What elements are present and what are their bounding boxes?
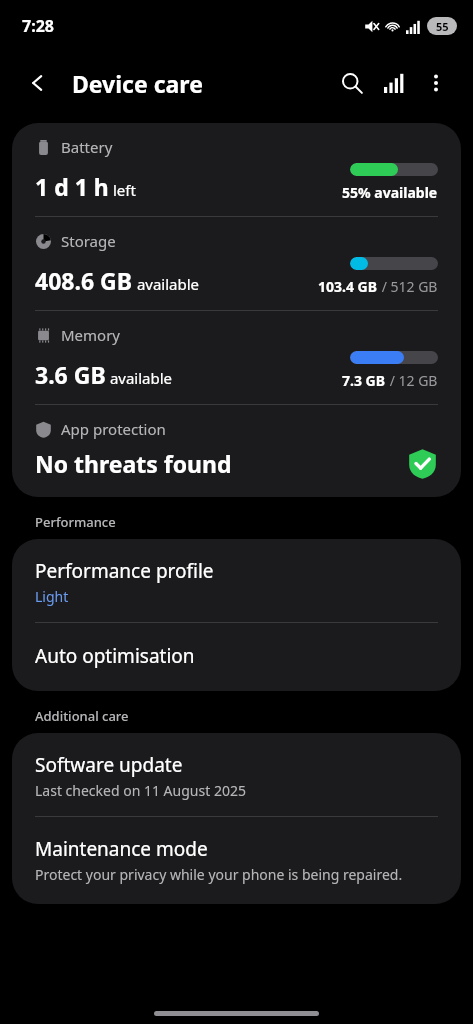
staticText: left	[109, 180, 136, 200]
staticText: Last checked on 11 August 2025	[35, 781, 246, 800]
staticText: 3.6 GB	[35, 359, 106, 390]
staticText: 7:28	[22, 15, 54, 37]
staticText: Maintenance mode	[35, 836, 208, 862]
staticText: App protection	[61, 419, 166, 439]
staticText: 103.4 GB	[318, 277, 378, 296]
button[interactable]: Search	[331, 62, 373, 104]
staticText: Memory	[61, 325, 121, 345]
button[interactable]: Memory	[12, 311, 461, 404]
button[interactable]: Software update	[12, 733, 461, 816]
staticText: Protect your privacy while your phone is…	[35, 865, 403, 884]
button[interactable]: Battery	[12, 123, 461, 216]
staticText: Light	[35, 587, 69, 606]
button[interactable]: Maintenance mode	[12, 817, 461, 904]
staticText: 55% available	[342, 183, 438, 202]
staticText: 408.6 GB	[35, 265, 133, 296]
button[interactable]: Storage	[12, 217, 461, 310]
staticText: Performance	[35, 513, 116, 531]
staticText: available	[133, 274, 200, 294]
button[interactable]: Usage statistics	[373, 62, 415, 104]
staticText: Auto optimisation	[35, 643, 195, 669]
staticText: 55	[436, 19, 449, 34]
staticText: No threats found	[35, 448, 407, 479]
button[interactable]: Performance profile	[12, 539, 461, 622]
staticText: / 512 GB	[378, 277, 438, 296]
staticText: available	[106, 368, 173, 388]
staticText: Additional care	[35, 707, 129, 725]
staticText: Storage	[61, 231, 116, 251]
button[interactable]: More options	[415, 62, 457, 104]
staticText: Software update	[35, 752, 183, 778]
staticText: Device care	[72, 68, 203, 99]
button[interactable]: Auto optimisation	[12, 623, 461, 691]
staticText: 1 d 1 h	[35, 171, 109, 202]
staticText: Battery	[61, 137, 113, 157]
staticText: Performance profile	[35, 558, 214, 584]
staticText: 7.3 GB	[342, 371, 386, 390]
staticText: / 12 GB	[386, 371, 438, 390]
button[interactable]: Back	[22, 67, 54, 99]
button[interactable]: App protection	[12, 405, 461, 497]
